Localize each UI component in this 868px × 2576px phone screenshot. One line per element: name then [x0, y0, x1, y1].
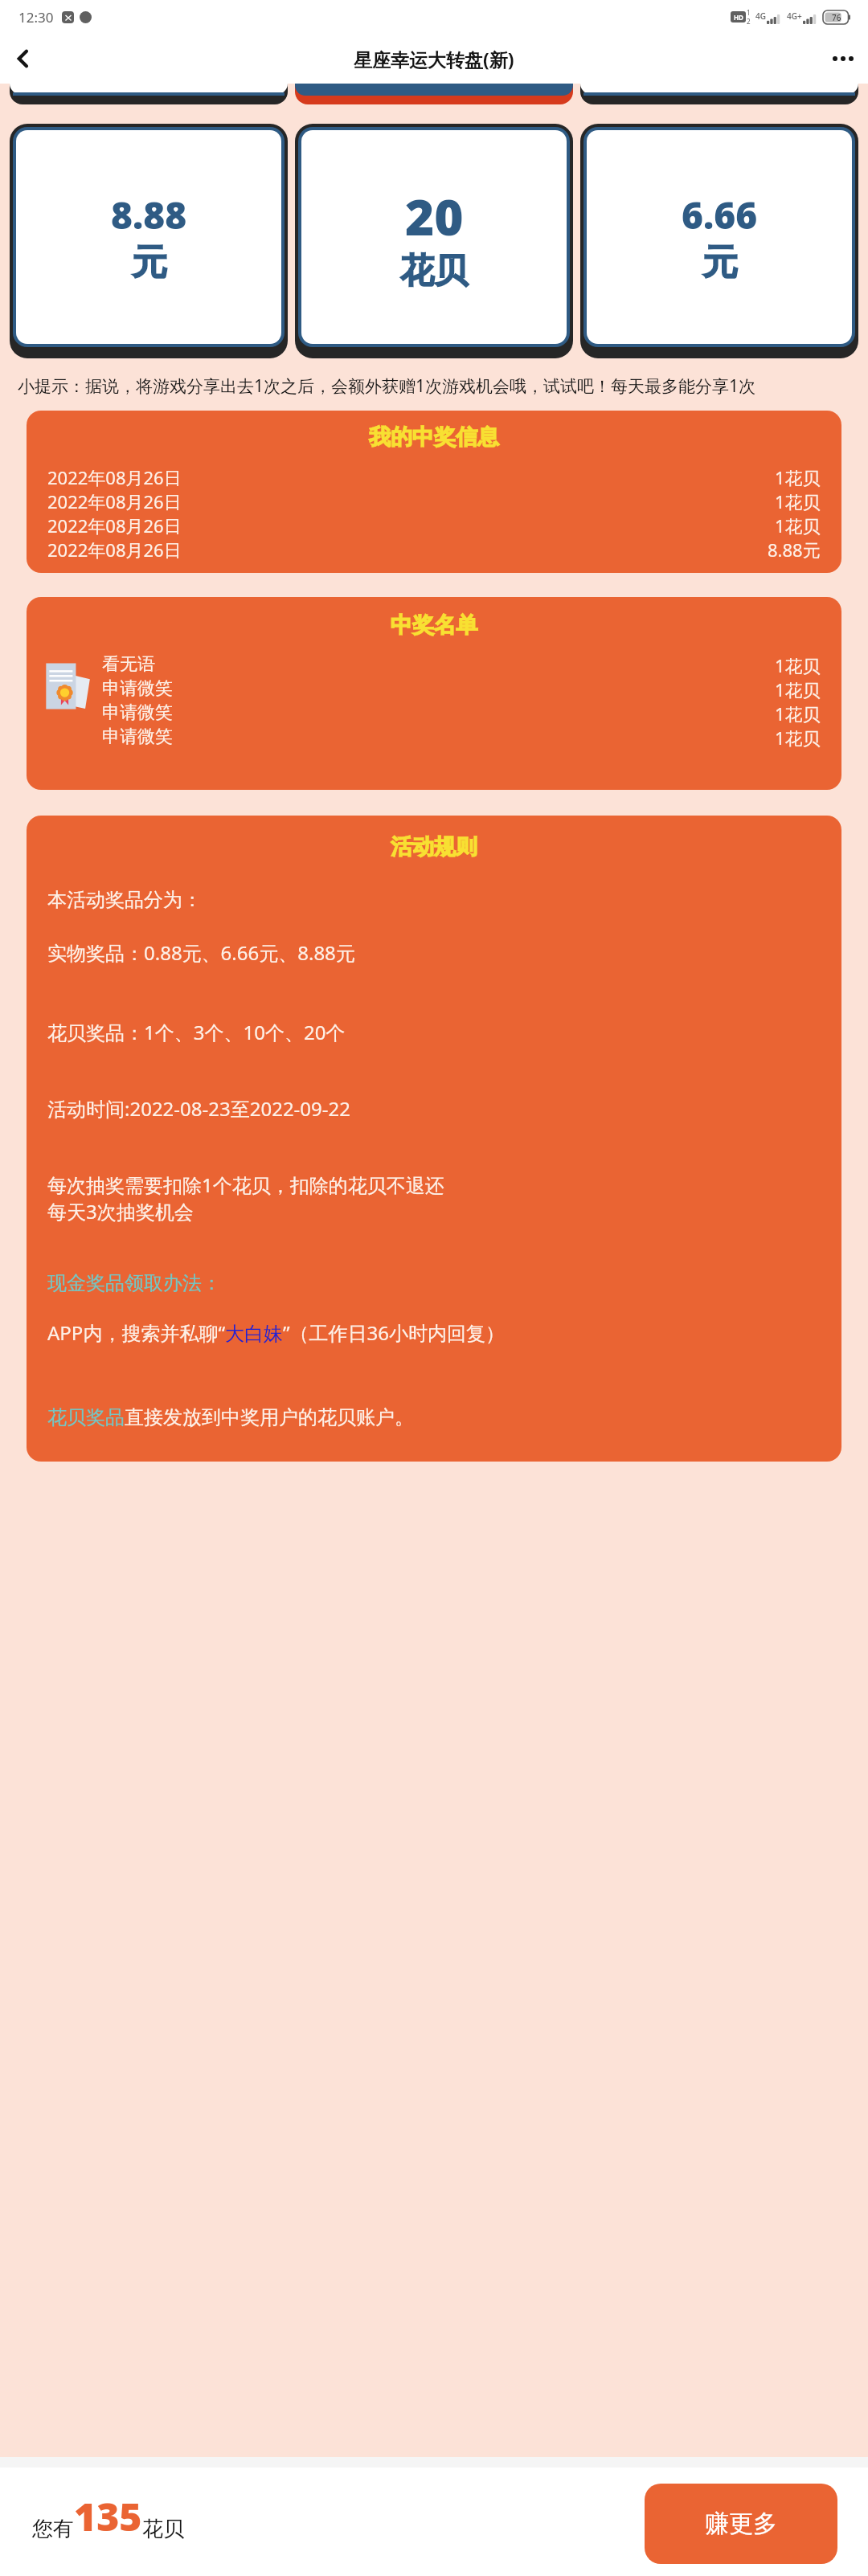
staticText: 花贝	[142, 2516, 184, 2542]
staticText: 12:30	[18, 8, 54, 27]
button[interactable]	[580, 84, 858, 104]
staticText: 6.66	[682, 190, 758, 240]
staticText: 元	[702, 240, 738, 284]
staticText: 1花贝	[775, 513, 821, 538]
staticText: 看无语	[102, 653, 155, 676]
staticText: 星座幸运大转盘(新)	[354, 47, 514, 72]
button[interactable]: 中奖名单	[27, 597, 841, 790]
staticText: 花贝奖品：1个、3个、10个、20个	[47, 1019, 346, 1045]
staticText: 1花贝	[775, 701, 821, 726]
staticText: 1花贝	[775, 677, 821, 701]
staticText: 20	[405, 182, 464, 250]
button[interactable]: 我的中奖信息	[27, 411, 841, 573]
staticText: 实物奖品：0.88元、6.66元、8.88元	[47, 939, 355, 966]
button[interactable]	[10, 84, 288, 104]
staticText: 8.88元	[768, 538, 821, 562]
staticText: 135	[74, 2490, 142, 2542]
staticText: 4G	[755, 10, 766, 22]
staticText: 您有	[32, 2516, 74, 2542]
staticText: 申请微笑	[102, 726, 173, 748]
staticText: 每天3次抽奖机会	[47, 1198, 194, 1225]
button[interactable]: 8.88	[10, 124, 288, 358]
staticText: 1花贝	[775, 465, 821, 489]
staticText: 1	[747, 8, 751, 17]
staticText: 活动时间:2022-08-23至2022-09-22	[47, 1095, 350, 1122]
staticText: 8.88	[111, 190, 187, 240]
staticText: 2022年08月26日	[47, 513, 182, 538]
staticText: 2022年08月26日	[47, 465, 182, 489]
button[interactable]: Back	[0, 35, 47, 82]
button[interactable]: 活动规则	[27, 816, 841, 1462]
staticText: 2022年08月26日	[47, 489, 182, 513]
staticText: 1花贝	[775, 653, 821, 677]
staticText: 赚更多	[705, 2509, 777, 2539]
button[interactable]: More options	[818, 34, 868, 84]
staticText: HD	[734, 13, 743, 22]
staticText: APP内，搜索并私聊“大白妹”（工作日36小时内回复）	[47, 1319, 506, 1346]
staticText: 现金奖品领取办法：	[47, 1271, 221, 1295]
staticText: 本活动奖品分为：	[47, 888, 202, 912]
staticText: 1花贝	[775, 726, 821, 750]
staticText: 1花贝	[775, 489, 821, 513]
staticText: 我的中奖信息	[27, 423, 841, 451]
staticText: 元	[132, 240, 167, 284]
staticText: 中奖名单	[27, 611, 841, 639]
staticText: 每次抽奖需要扣除1个花贝，扣除的花贝不退还	[47, 1171, 444, 1198]
button[interactable]: 赚更多	[645, 2484, 837, 2564]
button[interactable]: 6.66	[580, 124, 858, 358]
staticText: 申请微笑	[102, 701, 173, 724]
button[interactable]	[295, 84, 573, 104]
button[interactable]: 20	[295, 124, 573, 358]
staticText: 花贝	[400, 250, 468, 292]
staticText: 小提示：据说，将游戏分享出去1次之后，会额外获赠1次游戏机会哦，试试吧！每天最多…	[18, 374, 850, 398]
staticText: 2022年08月26日	[47, 538, 182, 562]
staticText: 申请微笑	[102, 677, 173, 700]
staticText: 76	[832, 12, 841, 23]
staticText: 4G+	[787, 10, 802, 22]
staticText: 花贝奖品直接发放到中奖用户的花贝账户。	[47, 1405, 414, 1429]
staticText: 活动规则	[27, 833, 841, 861]
staticText: 2	[747, 17, 751, 26]
